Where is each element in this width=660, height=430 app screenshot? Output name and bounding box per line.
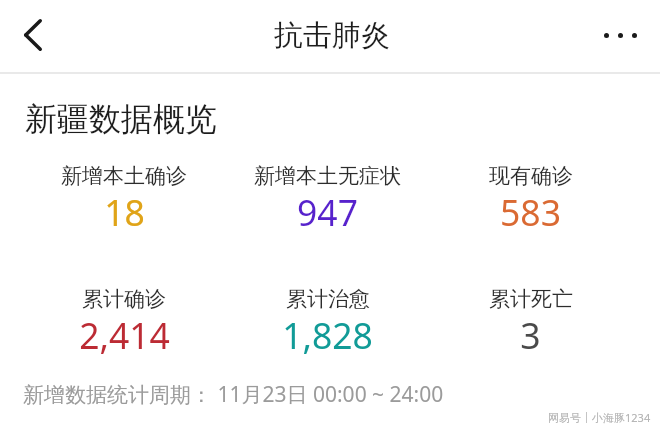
staticText: 947 (297, 188, 358, 236)
staticText: 2,414 (79, 311, 170, 359)
staticText: 583 (500, 188, 561, 236)
staticText: 现有确诊 (489, 163, 573, 189)
staticText: 抗击肺炎 (274, 17, 390, 54)
staticText: 小海豚1234 (592, 410, 651, 425)
button[interactable]: Back (7, 11, 59, 63)
staticText: 18 (104, 188, 145, 236)
staticText: 累计死亡 (489, 286, 573, 312)
staticText: 1,828 (282, 311, 373, 359)
staticText: 累计确诊 (82, 286, 166, 312)
staticText: 新增数据统计周期： 11月23日 00:00 ~ 24:00 (23, 380, 444, 409)
staticText: 新疆数据概览 (25, 99, 217, 139)
staticText: 3 (520, 311, 541, 359)
staticText: 网易号 (548, 411, 581, 425)
staticText: 新增本土确诊 (61, 163, 187, 189)
staticText: 新增本土无症状 (254, 163, 401, 189)
button[interactable]: More options (594, 9, 646, 61)
staticText: 累计治愈 (286, 286, 370, 312)
